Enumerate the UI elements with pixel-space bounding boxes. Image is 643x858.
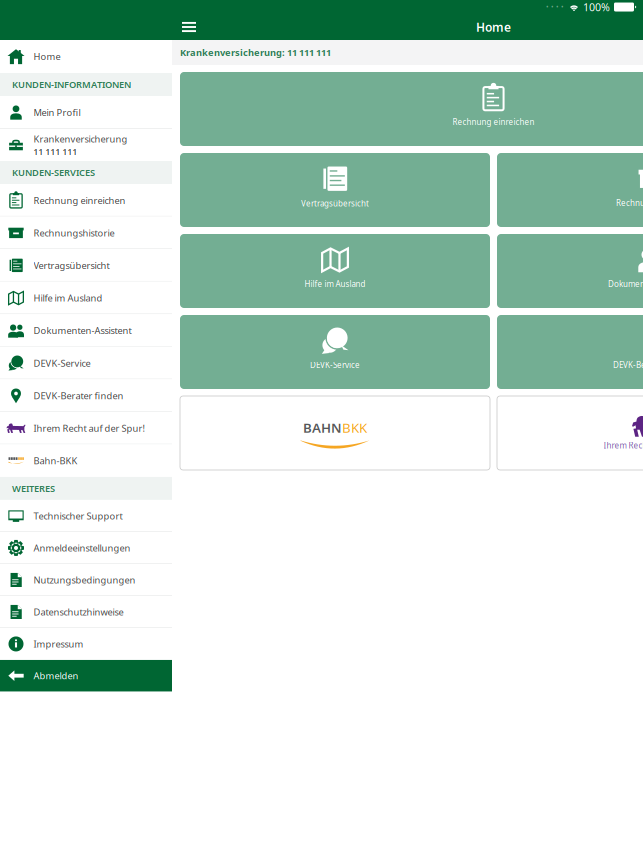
button[interactable]: DEVK-Service (180, 315, 490, 389)
staticText: KUNDEN-SERVICES (12, 166, 95, 179)
button[interactable]: DEVK-Berater finden (497, 315, 643, 389)
staticText: Rechnungshistorie (616, 198, 643, 208)
staticText: Datenschutzhinweise (33, 606, 123, 618)
button[interactable]: DEVK-Berater finden (0, 379, 172, 412)
button[interactable]: Technischer Support (0, 500, 172, 532)
button[interactable]: Krankenversicherung (0, 129, 172, 161)
staticText: Impressum (33, 638, 83, 650)
staticText: DEVK-Berater finden (33, 389, 123, 402)
staticText: Rechnung einreichen (33, 194, 125, 206)
staticText: Rechnungshistorie (33, 227, 114, 239)
staticText: Vertragsübersicht (301, 198, 369, 209)
staticText: Hilfe im Ausland (33, 292, 102, 304)
button[interactable]: Dokumenten-Assistent (497, 234, 643, 308)
button[interactable]: Rechnung einreichen (180, 72, 643, 146)
staticText: Vertragsübersicht (33, 259, 109, 272)
staticText: WEITERES (12, 482, 55, 495)
staticText: Rechnung einreichen (452, 117, 534, 127)
staticText: Home (476, 19, 511, 35)
button[interactable]: DEVK-Service (0, 347, 172, 379)
staticText: Ihrem Recht auf der Spur! (603, 440, 643, 451)
staticText: Mein Profil (33, 106, 80, 119)
staticText: Abmelden (33, 669, 78, 682)
button[interactable]: Rechnung einreichen (0, 184, 172, 216)
button[interactable]: Home (0, 40, 172, 73)
button[interactable]: BAHN (180, 396, 490, 470)
button[interactable]: Vertragsübersicht (180, 153, 490, 227)
button[interactable]: Mein Profil (0, 96, 172, 129)
button[interactable]: Rechnungshistorie (0, 217, 172, 249)
staticText: Ihrem Recht auf der Spur! (33, 422, 145, 434)
staticText: Krankenversicherung (33, 133, 127, 145)
staticText: Nutzungsbedingungen (33, 574, 135, 586)
button[interactable]: Dokumenten-Assistent (0, 314, 172, 347)
staticText: KUNDEN-INFORMATIONEN (12, 78, 131, 91)
button[interactable]: Abmelden (0, 660, 172, 691)
staticText: DEVK-Berater finden (613, 360, 643, 370)
button[interactable]: Rechnungshistorie (497, 153, 643, 227)
button[interactable]: Bahn-BKK (0, 444, 172, 477)
button[interactable]: Hilfe im Ausland (0, 282, 172, 314)
button[interactable]: Vertragsübersicht (0, 249, 172, 282)
button[interactable]: Ihrem Recht auf der Spur! (0, 412, 172, 444)
staticText: 100% (583, 0, 610, 14)
staticText: Home (33, 50, 60, 63)
staticText: Anmeldeeinstellungen (33, 542, 130, 554)
staticText: Dokumenten-Assistent (608, 279, 643, 289)
staticText: Bahn-BKK (33, 454, 77, 467)
button[interactable]: Nutzungsbedingungen (0, 564, 172, 596)
staticText: Krankenversicherung: 11 111 111 (180, 46, 331, 59)
staticText: DEVK-Service (310, 360, 360, 370)
button[interactable]: Ihrem Recht auf der Spur! (497, 396, 643, 470)
button[interactable]: Hilfe im Ausland (180, 234, 490, 308)
button[interactable]: Anmeldeeinstellungen (0, 532, 172, 564)
button[interactable]: Menu (172, 14, 206, 40)
staticText: Technischer Support (33, 510, 122, 522)
staticText: 11 111 111 (33, 147, 77, 157)
staticText: DEVK-Service (33, 357, 90, 369)
staticText: • • • • (546, 3, 564, 11)
staticText: BAHN (303, 419, 342, 436)
staticText: BKK (342, 419, 367, 436)
button[interactable]: Impressum (0, 628, 172, 660)
button[interactable]: Datenschutzhinweise (0, 596, 172, 628)
staticText: Hilfe im Ausland (304, 279, 365, 289)
staticText: Dokumenten-Assistent (33, 324, 131, 337)
